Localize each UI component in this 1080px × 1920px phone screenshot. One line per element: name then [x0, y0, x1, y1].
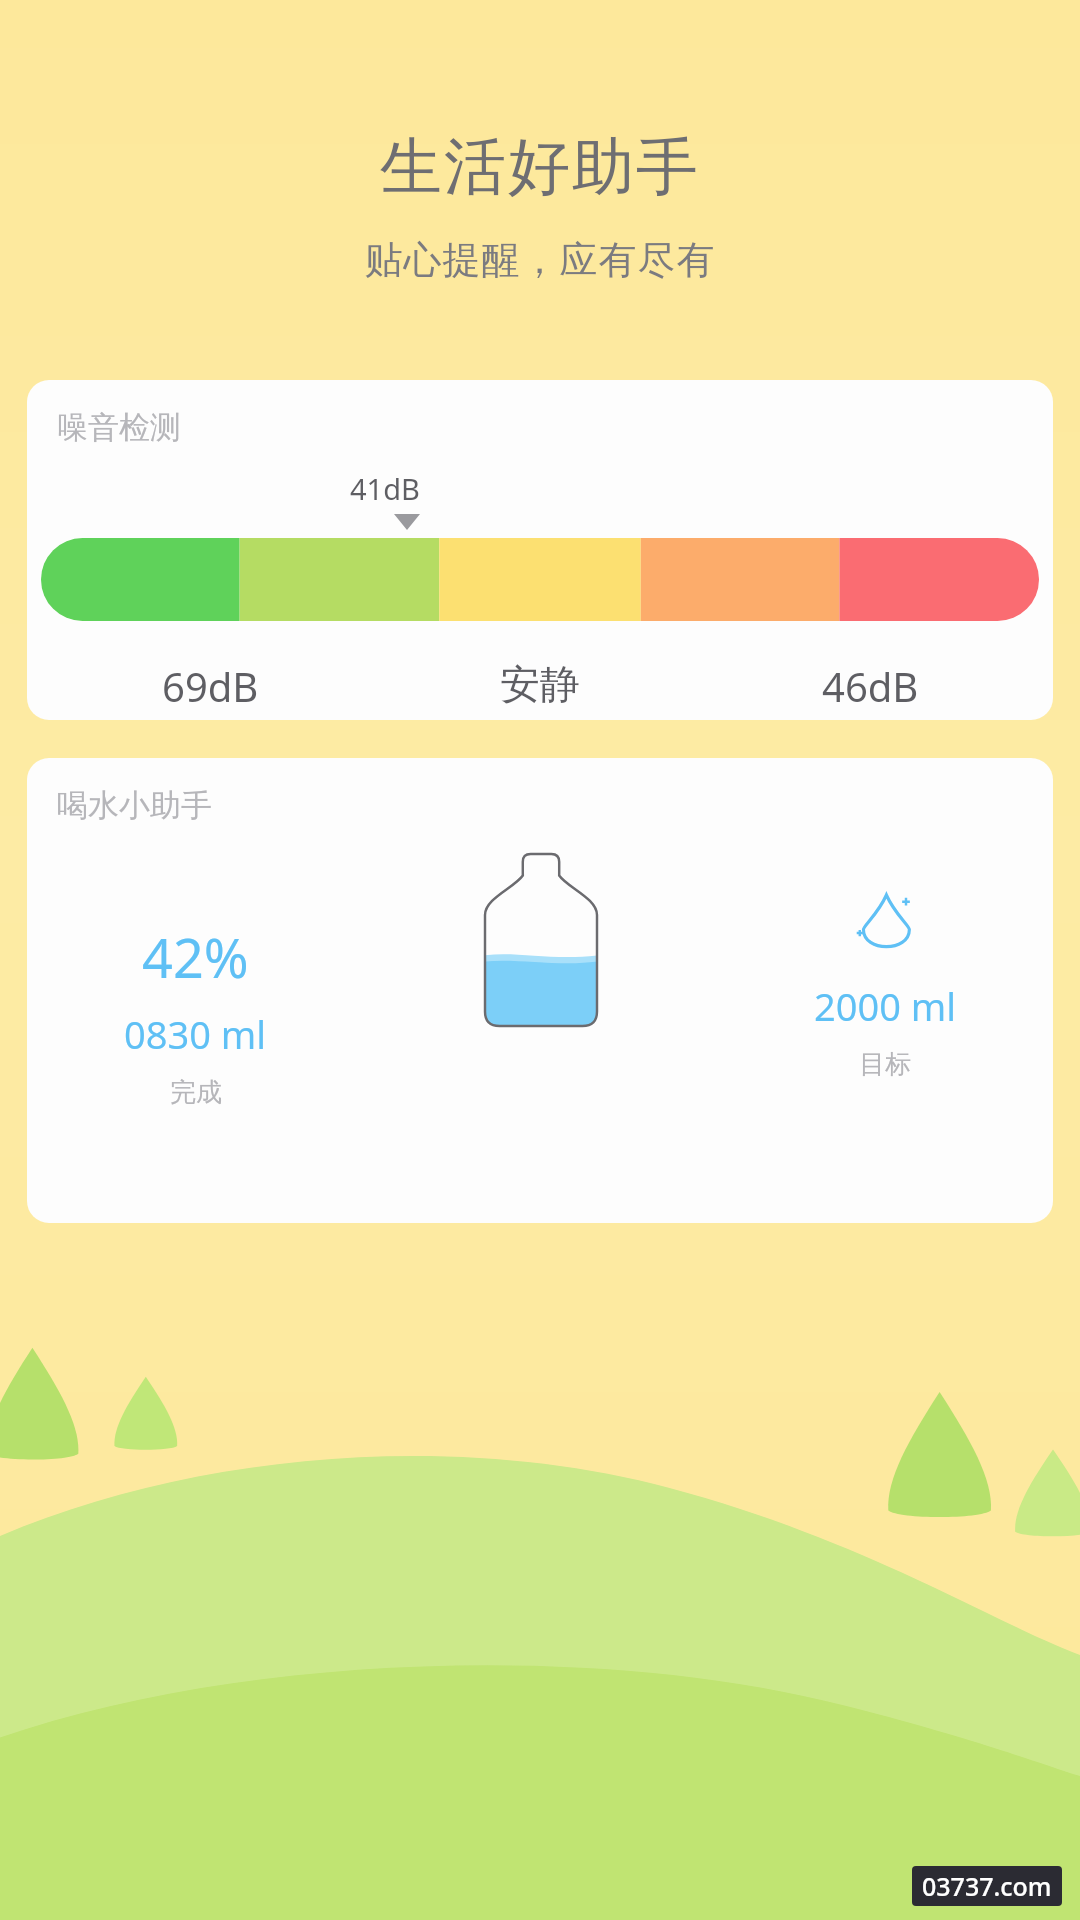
- staticText: 安静: [500, 659, 580, 709]
- staticText: 2000 ml: [814, 980, 957, 1032]
- staticText: 贴心提醒，应有尽有: [0, 236, 1080, 284]
- button[interactable]: 噪音检测: [27, 380, 1053, 720]
- other: Water goal: [850, 888, 920, 958]
- staticText: 喝水小助手: [57, 786, 212, 825]
- staticText: 生活好助手: [0, 128, 1080, 206]
- staticText: 42%: [142, 920, 249, 994]
- staticText: 69dB: [162, 659, 259, 713]
- staticText: 46dB: [822, 659, 919, 713]
- staticText: 03737.com: [922, 1869, 1052, 1903]
- staticText: 目标: [859, 1048, 911, 1081]
- staticText: 完成: [170, 1076, 222, 1109]
- staticText: 0830 ml: [124, 1008, 267, 1060]
- button[interactable]: 喝水小助手: [27, 758, 1053, 1223]
- staticText: 41dB: [350, 469, 420, 508]
- staticText: 噪音检测: [57, 408, 181, 447]
